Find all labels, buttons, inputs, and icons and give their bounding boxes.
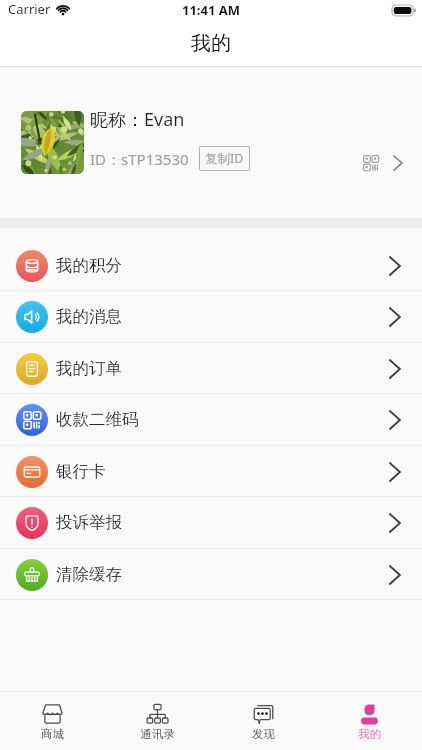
button[interactable]: 发现 — [210, 701, 316, 741]
button[interactable]: 我的 — [316, 701, 422, 741]
staticText: ID：sTP13530 — [90, 149, 189, 169]
staticText: 我的 — [358, 727, 381, 741]
staticText: 我的消息 — [56, 306, 122, 327]
button[interactable]: My QR code — [357, 149, 385, 177]
button[interactable]: 银行卡 — [0, 446, 422, 497]
button[interactable]: 商城 — [0, 701, 105, 741]
button[interactable]: 通讯录 — [105, 701, 210, 741]
staticText: 商城 — [41, 727, 64, 741]
staticText: 清除缓存 — [56, 564, 122, 585]
staticText: 我的 — [191, 31, 231, 56]
staticText: 投诉举报 — [56, 512, 122, 533]
button[interactable]: 清除缓存 — [0, 549, 422, 600]
button[interactable]: 收款二维码 — [0, 394, 422, 445]
staticText: 我的积分 — [56, 255, 122, 276]
staticText: 我的订单 — [56, 358, 122, 379]
staticText: 发现 — [252, 727, 275, 741]
staticText: Carrier — [8, 0, 51, 18]
staticText: 复制ID — [205, 150, 244, 167]
button[interactable]: 昵称：Evan — [0, 67, 422, 218]
button[interactable]: 我的订单 — [0, 343, 422, 394]
button[interactable]: 我的消息 — [0, 291, 422, 342]
other: Profile details — [385, 150, 411, 176]
staticText: 11:41 AM — [182, 1, 241, 19]
button[interactable]: 我的积分 — [0, 240, 422, 291]
button[interactable]: 投诉举报 — [0, 497, 422, 548]
button[interactable]: 复制ID — [199, 146, 250, 171]
staticText: 银行卡 — [56, 461, 106, 482]
staticText: 通讯录 — [140, 727, 175, 741]
staticText: 收款二维码 — [56, 409, 139, 430]
staticText: 昵称：Evan — [90, 107, 185, 132]
